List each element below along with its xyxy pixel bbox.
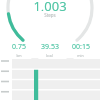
button[interactable]: 00:15 xyxy=(65,42,96,58)
button[interactable]: Hourly step chart xyxy=(0,58,100,100)
staticText: min xyxy=(77,53,84,58)
staticText: 00:15 xyxy=(72,42,90,52)
button[interactable]: 0.75 xyxy=(4,42,34,58)
staticText: Steps xyxy=(44,12,56,18)
staticText: 39.53 xyxy=(41,42,59,52)
button[interactable]: Step goal progress xyxy=(0,0,100,60)
staticText: km xyxy=(16,53,22,58)
button[interactable]: 1,003 xyxy=(33,0,67,18)
staticText: 1,003 xyxy=(33,0,67,11)
button[interactable]: 39.53 xyxy=(34,42,65,58)
staticText: 0.75 xyxy=(12,42,26,52)
staticText: kcal xyxy=(46,53,53,58)
